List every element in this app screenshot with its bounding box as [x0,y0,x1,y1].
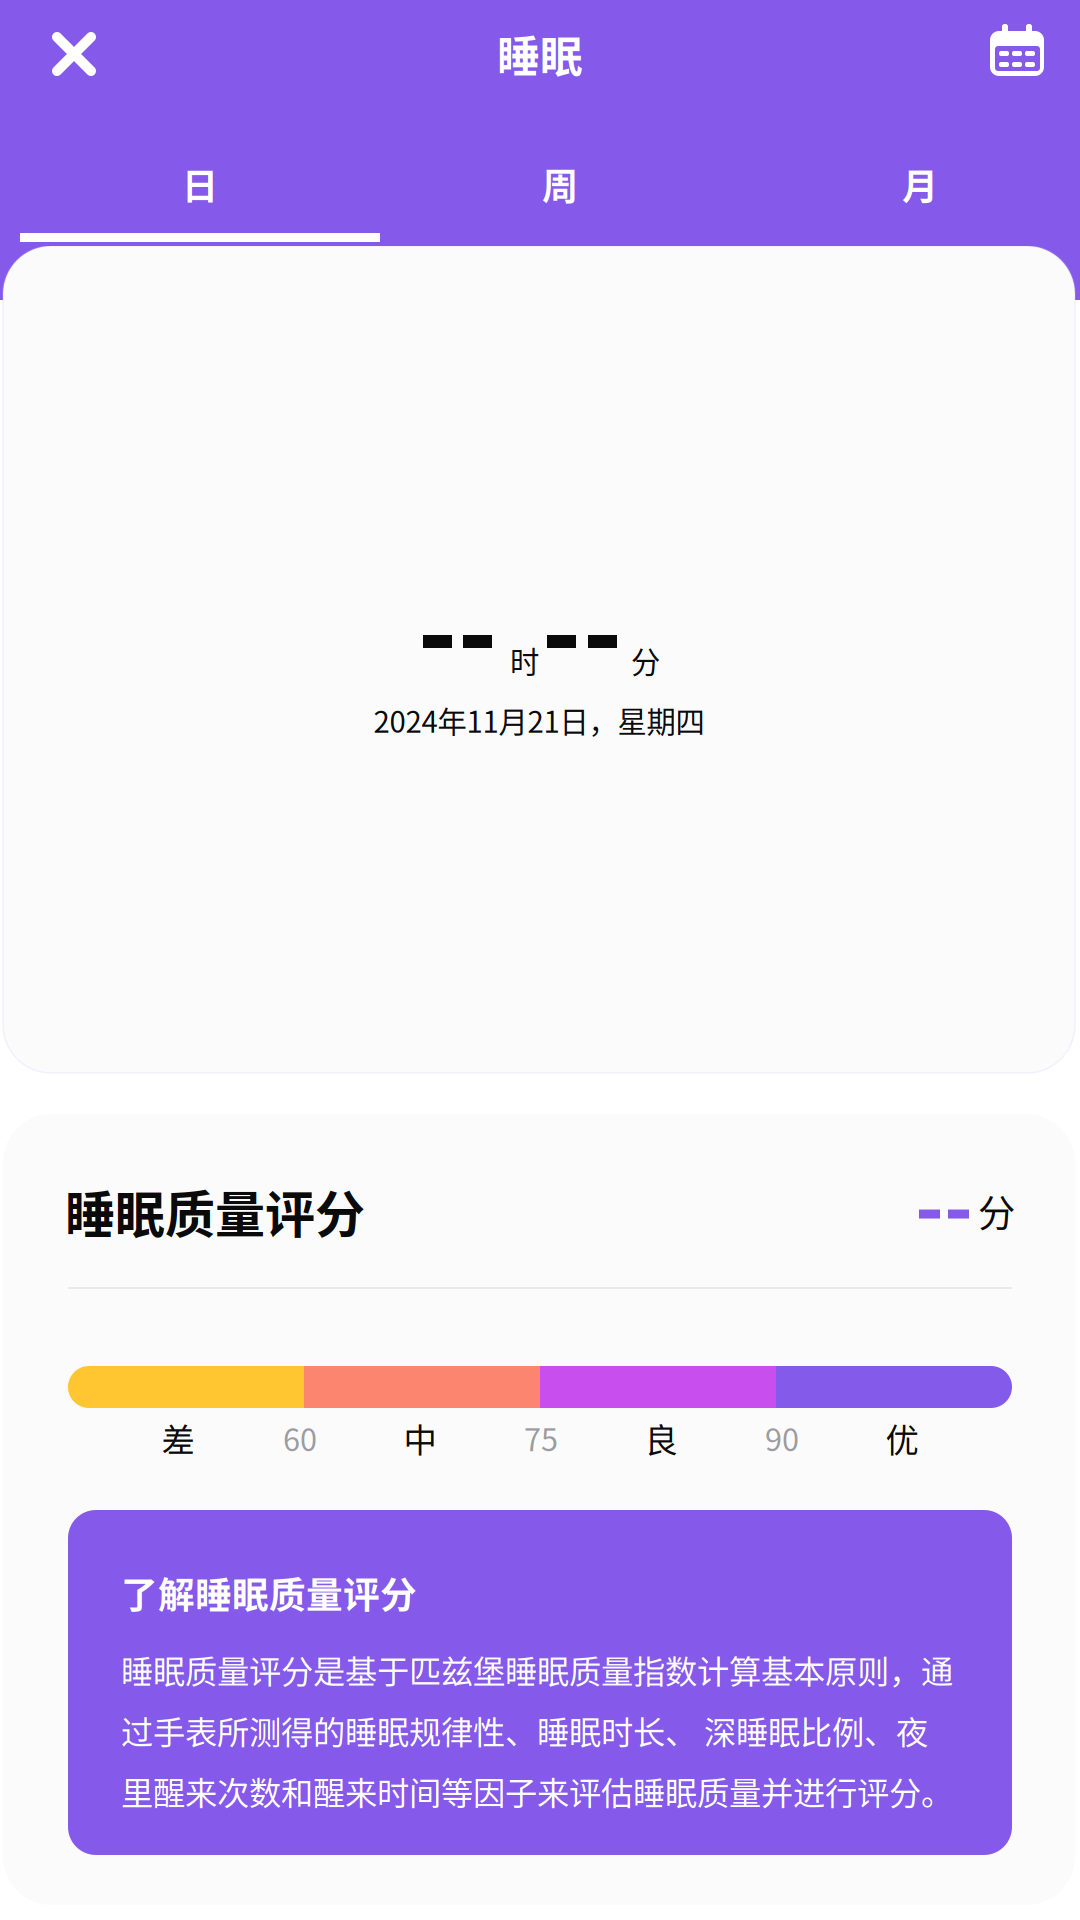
staticText: 良 [644,1414,677,1462]
staticText: 90 [765,1416,799,1460]
button[interactable]: 日历 [932,0,1056,108]
staticText: 2024年11月21日，星期四 [373,699,704,741]
staticText: 了解睡眠质量评分 [121,1566,417,1619]
staticText: 优 [885,1414,918,1462]
staticText: 周 [542,158,578,210]
staticText: 时 [510,639,539,681]
staticText: 睡眠质量评分是基于匹兹堡睡眠质量指数计算基本原则，通过手表所测得的睡眠规律性、睡… [121,1646,953,1814]
staticText: 分 [631,639,660,681]
staticText: 差 [161,1414,194,1462]
staticText: 75 [524,1416,558,1460]
button[interactable]: 月 [740,108,1080,246]
staticText: 日 [182,158,218,210]
button[interactable]: 日 [20,108,380,246]
staticText: 月 [902,158,938,210]
staticText: 中 [403,1414,436,1462]
staticText: 睡眠质量评分 [65,1175,365,1247]
staticText: 睡眠 [497,23,583,85]
staticText: 60 [283,1416,317,1460]
button[interactable]: 周 [380,108,740,246]
button[interactable]: 关闭 [0,0,148,108]
staticText: 分 [978,1184,1015,1238]
